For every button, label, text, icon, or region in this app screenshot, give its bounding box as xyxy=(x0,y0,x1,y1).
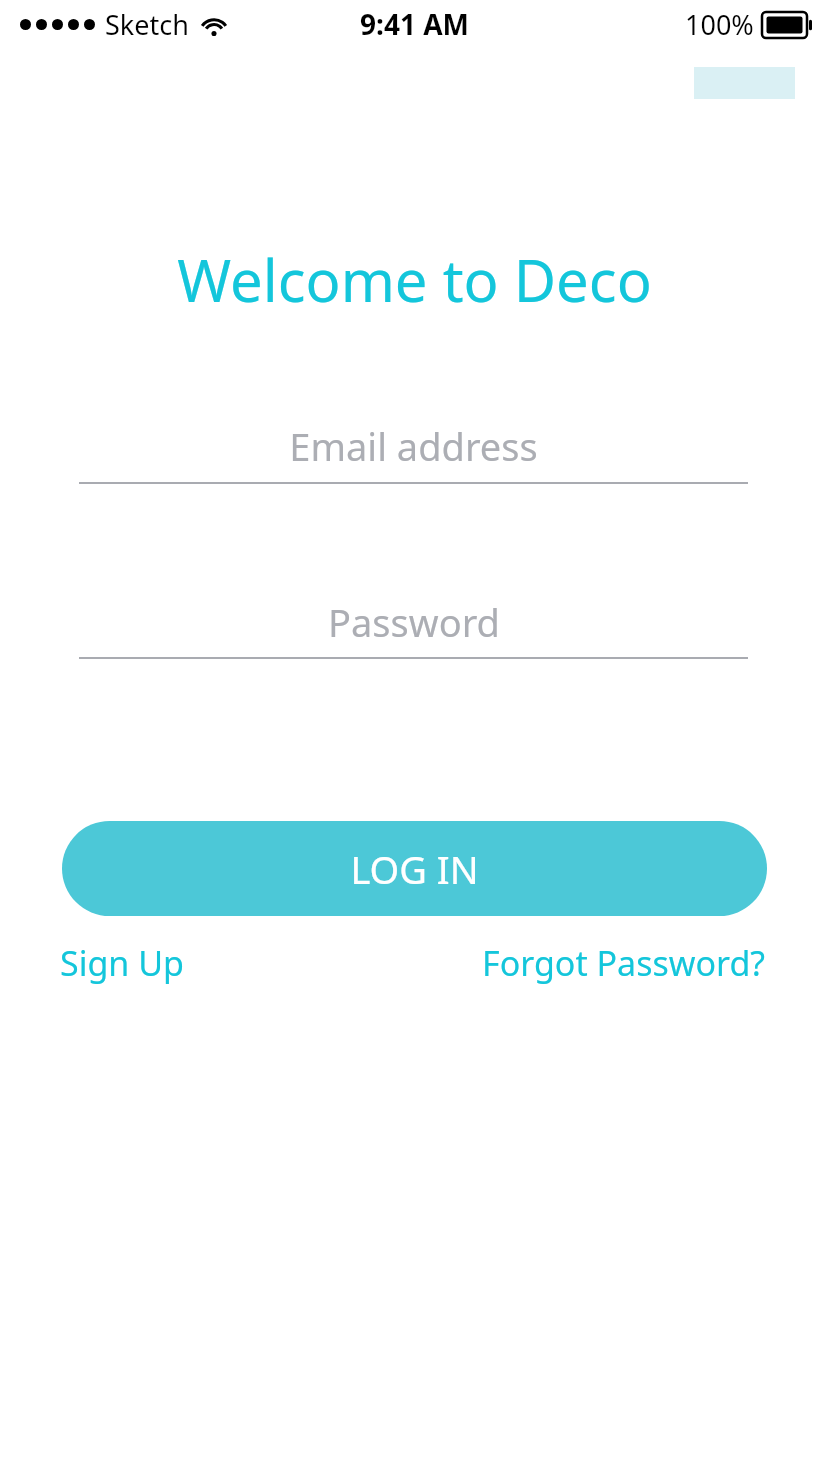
staticText: Sign Up xyxy=(60,940,184,986)
staticText: 100% xyxy=(685,6,754,43)
button[interactable]: LOG IN xyxy=(62,821,767,916)
staticText: LOG IN xyxy=(350,843,479,895)
button[interactable]: Sign Up xyxy=(58,936,186,990)
staticText: Welcome to Deco xyxy=(177,240,652,319)
staticText: 9:41 AM xyxy=(360,5,469,43)
button[interactable]: Email address xyxy=(79,420,748,490)
staticText: Password xyxy=(328,596,500,648)
button[interactable]: Password xyxy=(79,596,748,666)
staticText: Sketch xyxy=(105,6,189,43)
staticText: Email address xyxy=(289,420,538,472)
button[interactable]: Forgot Password? xyxy=(480,936,768,990)
staticText: Forgot Password? xyxy=(482,940,766,986)
